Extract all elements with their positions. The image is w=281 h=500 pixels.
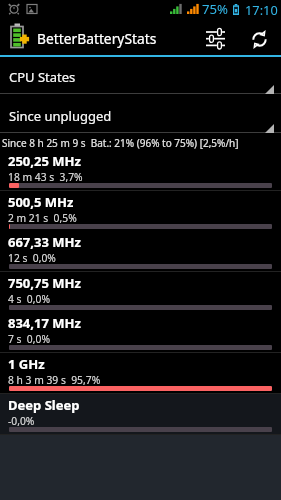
staticText: 12 s 0,0% (8, 251, 56, 265)
button[interactable]: Settings (195, 20, 235, 56)
button[interactable]: 500,5 MHz (0, 191, 281, 232)
staticText: 7 s 0,0% (8, 332, 50, 346)
staticText: BetterBatteryStats (37, 29, 157, 48)
staticText: 8 h 3 m 39 s 95,7% (8, 373, 101, 387)
staticText: 18 m 43 s 3,7% (8, 170, 83, 184)
button[interactable]: Refresh (239, 21, 279, 57)
staticText: 2 m 21 s 0,5% (8, 211, 77, 225)
button[interactable]: CPU States (0, 58, 281, 95)
button[interactable]: Since unplugged (0, 97, 281, 134)
staticText: 667,33 MHz (8, 233, 81, 251)
staticText: 750,75 MHz (8, 274, 81, 292)
staticText: 250,25 MHz (8, 152, 81, 170)
staticText: Since unplugged (9, 107, 112, 125)
staticText: -0,0% (8, 414, 35, 428)
button[interactable]: 1 GHz (0, 353, 281, 394)
staticText: 75% (202, 0, 229, 18)
staticText: Deep Sleep (8, 396, 80, 414)
button[interactable]: 250,25 MHz (0, 150, 281, 191)
staticText: 17:10 (245, 1, 278, 18)
button[interactable]: 750,75 MHz (0, 272, 281, 313)
staticText: 4 s 0,0% (8, 292, 50, 306)
staticText: 1 GHz (8, 355, 45, 373)
staticText: 834,17 MHz (8, 314, 81, 332)
staticText: Since 8 h 25 m 9 s Bat.: 21% (96% to 75%… (2, 136, 239, 150)
staticText: CPU States (9, 68, 76, 86)
button[interactable]: Deep Sleep (0, 394, 281, 435)
staticText: 500,5 MHz (8, 193, 74, 211)
button[interactable]: 667,33 MHz (0, 231, 281, 272)
button[interactable]: 834,17 MHz (0, 312, 281, 353)
